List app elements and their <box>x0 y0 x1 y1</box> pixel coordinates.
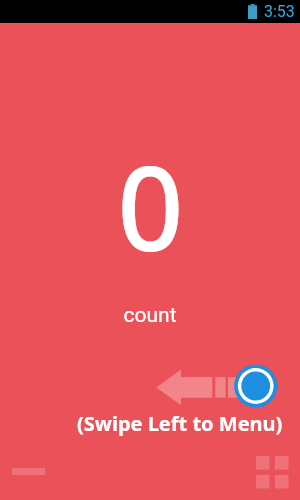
button[interactable]: Menu <box>256 456 288 488</box>
button[interactable]: Increment counter <box>0 0 300 500</box>
staticText: 0 <box>117 127 184 285</box>
staticText: 3:53 <box>264 2 295 21</box>
staticText: count <box>123 303 177 328</box>
staticText: (Swipe Left to Menu) <box>77 410 283 437</box>
